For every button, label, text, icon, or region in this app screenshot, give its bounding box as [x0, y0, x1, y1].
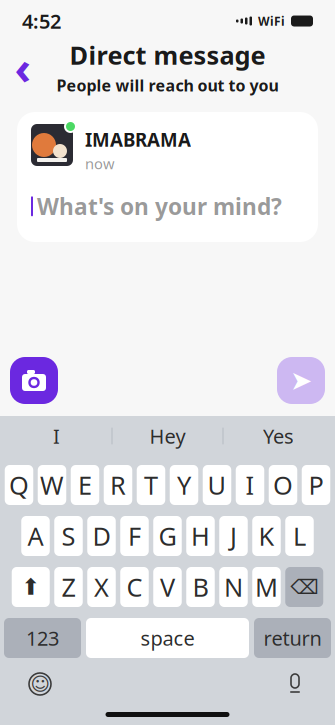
staticText: ☺ [30, 673, 49, 695]
button[interactable]: space [86, 618, 249, 658]
staticText: A [27, 519, 43, 553]
button[interactable]: J [219, 516, 248, 556]
button[interactable]: N [219, 567, 248, 607]
button[interactable]: I [1, 416, 111, 456]
staticText: S [61, 519, 75, 553]
staticText: IMABRAMA [85, 127, 191, 152]
button[interactable]: A [21, 516, 50, 556]
staticText: space [140, 625, 194, 651]
staticText: 123 [26, 625, 59, 651]
staticText: 4:52 [22, 8, 61, 34]
staticText: now [85, 154, 115, 173]
button[interactable]: Q [5, 465, 33, 505]
staticText: U [207, 468, 226, 502]
button[interactable]: Delete [285, 567, 323, 607]
button[interactable]: L [285, 516, 314, 556]
button[interactable]: Dictation [277, 666, 313, 702]
button[interactable]: T [137, 465, 165, 505]
button[interactable]: I [236, 465, 264, 505]
staticText: Yes [263, 423, 294, 449]
staticText: ⌫ [290, 576, 318, 598]
button[interactable]: Back [6, 50, 40, 84]
staticText: L [293, 519, 306, 553]
staticText: Z [61, 570, 75, 604]
staticText: E [78, 468, 92, 502]
staticText: W [40, 468, 64, 502]
button[interactable]: Shift [12, 567, 50, 607]
button[interactable]: Hey [112, 416, 222, 456]
staticText: K [258, 519, 274, 553]
button[interactable]: return [254, 618, 331, 658]
button[interactable]: X [87, 567, 116, 607]
staticText: C [126, 570, 142, 604]
staticText: R [110, 468, 126, 502]
staticText: H [191, 519, 210, 553]
button[interactable]: 123 [4, 618, 81, 658]
button[interactable]: E [71, 465, 99, 505]
staticText: Hey [149, 423, 185, 449]
button[interactable]: F [120, 516, 149, 556]
button[interactable]: B [186, 567, 215, 607]
button[interactable]: K [252, 516, 281, 556]
staticText: P [308, 468, 323, 502]
staticText: Q [9, 468, 29, 502]
button[interactable]: Yes [223, 416, 333, 456]
button[interactable]: Emoji [22, 666, 58, 702]
button[interactable]: Z [54, 567, 83, 607]
button[interactable]: G [153, 516, 182, 556]
staticText: J [230, 519, 237, 553]
button[interactable]: S [54, 516, 83, 556]
staticText: V [160, 570, 175, 604]
button[interactable]: U [203, 465, 231, 505]
staticText: F [128, 519, 141, 553]
staticText: Direct message [69, 38, 265, 72]
staticText: N [224, 570, 243, 604]
staticText: G [158, 519, 176, 553]
staticText: B [192, 570, 208, 604]
button[interactable]: M [252, 567, 281, 607]
staticText: People will reach out to you [56, 75, 278, 96]
button[interactable]: H [186, 516, 215, 556]
button[interactable]: C [120, 567, 149, 607]
staticText: WiFi [258, 13, 285, 29]
button[interactable]: O [269, 465, 297, 505]
staticText: I [245, 468, 254, 502]
button[interactable]: V [153, 567, 182, 607]
staticText: ⬆ [21, 574, 40, 600]
staticText: return [263, 625, 321, 651]
button[interactable]: P [302, 465, 330, 505]
button[interactable]: Camera [10, 357, 58, 404]
button[interactable]: D [87, 516, 116, 556]
button[interactable]: Y [170, 465, 198, 505]
staticText: ➤ [290, 365, 312, 396]
staticText: T [144, 468, 158, 502]
staticText: What's on your mind? [37, 191, 282, 221]
button[interactable]: W [38, 465, 66, 505]
staticText: I [53, 423, 60, 449]
staticText: ‹ [14, 37, 31, 97]
staticText: M [255, 570, 278, 604]
staticText: O [273, 468, 293, 502]
button[interactable]: R [104, 465, 132, 505]
staticText: Y [177, 468, 191, 502]
button[interactable]: Send [277, 357, 325, 404]
staticText: D [92, 519, 110, 553]
staticText: X [94, 570, 109, 604]
